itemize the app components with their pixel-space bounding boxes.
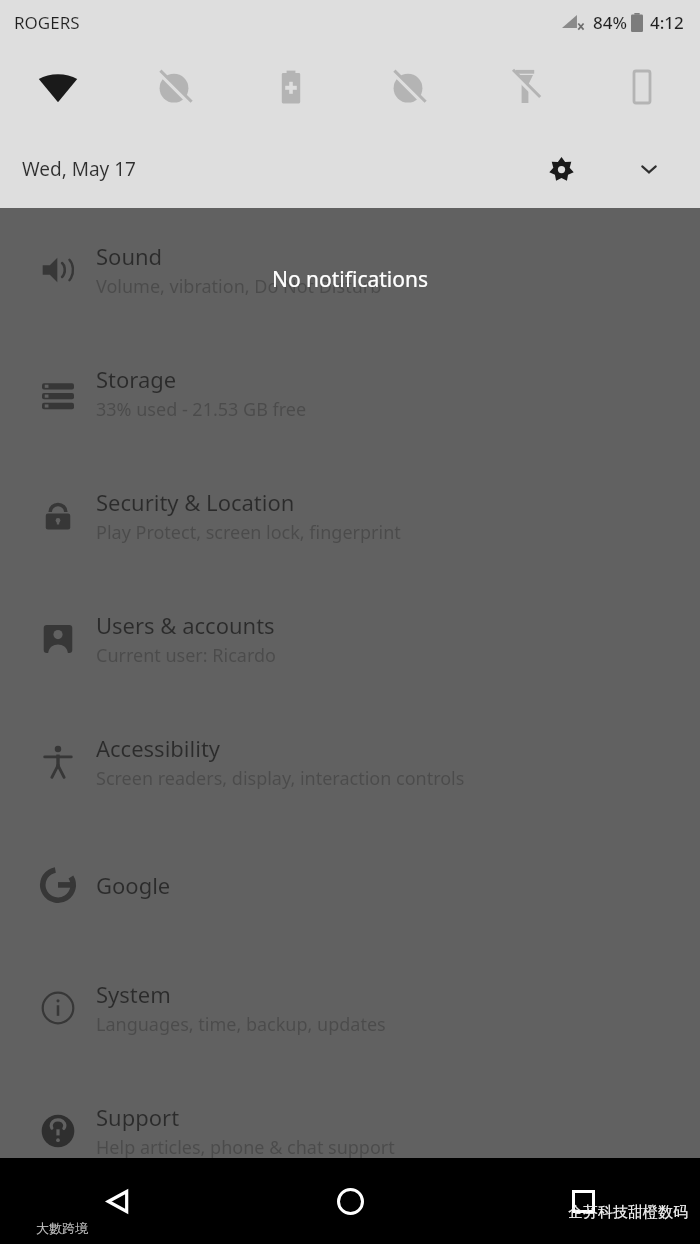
staticText: Screen readers, display, interaction con… — [96, 766, 465, 791]
staticText: Current user: Ricardo — [96, 643, 276, 668]
button[interactable]: Security & Location — [0, 454, 700, 577]
staticText: Support — [96, 1102, 180, 1132]
button[interactable]: Auto rotate — [583, 44, 700, 130]
button[interactable]: Flashlight off — [466, 44, 583, 130]
button[interactable]: Bluetooth off — [349, 44, 466, 130]
staticText: 4:12 — [650, 11, 684, 34]
button[interactable]: Mobile data off — [116, 44, 232, 130]
staticText: ROGERS — [14, 11, 80, 34]
button[interactable]: Recent apps — [467, 1158, 700, 1244]
button[interactable]: Back — [0, 1158, 234, 1244]
staticText: 企芬科技甜橙数码 — [568, 1203, 688, 1222]
button[interactable]: Accessibility — [0, 700, 700, 823]
button[interactable]: Settings — [538, 146, 584, 192]
button[interactable]: Battery saver — [232, 44, 349, 130]
button[interactable]: Sound — [0, 208, 700, 331]
staticText: Sound — [96, 241, 163, 271]
button[interactable]: Storage — [0, 331, 700, 454]
staticText: System — [96, 979, 171, 1009]
button[interactable]: Home — [234, 1158, 467, 1244]
staticText: Storage — [96, 364, 177, 394]
staticText: No notifications — [0, 265, 700, 294]
button[interactable]: Google — [0, 823, 700, 946]
button[interactable]: Expand — [626, 146, 672, 192]
staticText: Accessibility — [96, 733, 221, 763]
button[interactable]: Support — [0, 1069, 700, 1192]
staticText: 33% used - 21.53 GB free — [96, 397, 307, 422]
staticText: Languages, time, backup, updates — [96, 1012, 386, 1037]
staticText: Google — [96, 870, 171, 900]
staticText: Play Protect, screen lock, fingerprint — [96, 520, 401, 545]
staticText: Volume, vibration, Do Not Disturb — [96, 274, 382, 299]
staticText: 84% — [593, 11, 627, 34]
button[interactable]: System — [0, 946, 700, 1069]
staticText: Users & accounts — [96, 610, 275, 640]
staticText: Help articles, phone & chat support — [96, 1135, 395, 1160]
staticText: Wed, May 17 — [22, 156, 136, 182]
staticText: Security & Location — [96, 487, 295, 517]
button[interactable]: Wi-Fi — [0, 44, 116, 130]
staticText: 大數跨境 — [36, 1220, 88, 1236]
button[interactable]: Users & accounts — [0, 577, 700, 700]
